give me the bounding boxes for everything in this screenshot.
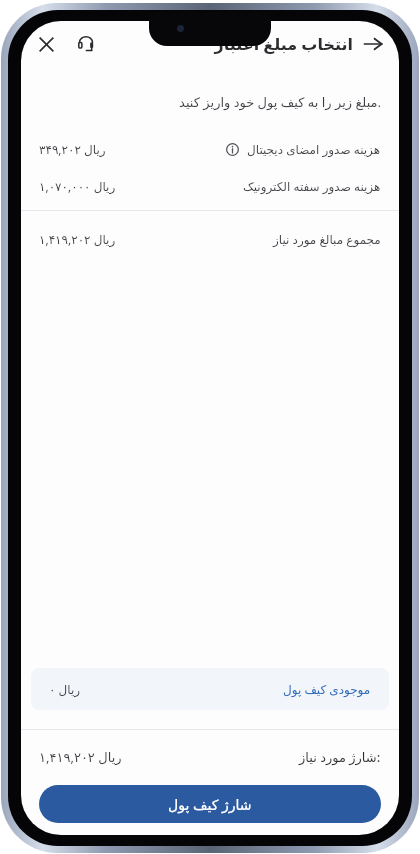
- button[interactable]: Information: [225, 142, 240, 157]
- button[interactable]: Support: [69, 27, 103, 61]
- staticText: شارژ مورد نیاز:: [299, 748, 381, 766]
- staticText: موجودی کیف پول: [283, 681, 371, 697]
- staticText: مجموع مبالغ مورد نیاز: [273, 231, 381, 247]
- staticText: ۱,۰۷۰,۰۰۰ ریال: [39, 178, 116, 194]
- button[interactable]: Close: [29, 27, 63, 61]
- button[interactable]: Back: [353, 24, 393, 64]
- staticText: هزینه صدور سفته الکترونیک: [243, 178, 381, 194]
- button[interactable]: شارژ کیف پول: [39, 785, 381, 823]
- staticText: ۱,۴۱۹,۲۰۲ ریال: [39, 748, 122, 766]
- staticText: مبلغ زیر را به کیف پول خود واریز کنید.: [21, 93, 381, 111]
- staticText: هزینه صدور امضای دیجیتال: [247, 141, 381, 157]
- staticText: شارژ کیف پول: [168, 795, 252, 814]
- staticText: ۳۴۹,۲۰۲ ریال: [39, 141, 106, 157]
- staticText: ۰ ریال: [49, 681, 81, 697]
- staticText: انتخاب مبلغ اعتبار: [214, 33, 353, 55]
- staticText: ۱,۴۱۹,۲۰۲ ریال: [39, 231, 116, 247]
- button[interactable]: ۰ ریال: [31, 668, 389, 710]
